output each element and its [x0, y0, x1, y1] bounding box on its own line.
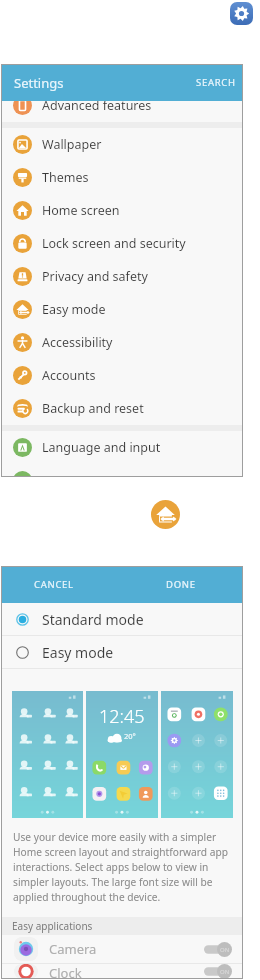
button[interactable]: Clock [1, 964, 243, 979]
button[interactable]: Language and input [1, 431, 243, 464]
button[interactable]: SEARCH [189, 69, 243, 96]
staticText: Settings [14, 74, 64, 92]
button[interactable]: CANCEL [28, 572, 80, 597]
button[interactable]: Easy mode [1, 636, 243, 668]
staticText: Easy mode [42, 301, 106, 318]
button[interactable]: Camera [1, 935, 243, 963]
staticText: Privacy and safety [42, 268, 148, 285]
staticText: SEARCH [196, 76, 236, 89]
button[interactable]: Themes [1, 161, 243, 194]
button[interactable]: Wallpaper [1, 128, 243, 161]
button[interactable] [1, 464, 243, 477]
staticText: CANCEL [34, 578, 74, 591]
staticText: Use your device more easily with a simpl… [13, 830, 234, 904]
staticText: DONE [166, 578, 196, 591]
staticText: Home screen [42, 202, 120, 219]
button[interactable]: Accounts [1, 359, 243, 392]
button[interactable]: Advanced features [1, 89, 243, 122]
staticText: Accessibility [42, 334, 113, 351]
staticText: Camera [49, 940, 97, 958]
staticText: ON [220, 968, 230, 976]
staticText: Easy mode [42, 643, 114, 662]
staticText: Clock [49, 964, 82, 979]
staticText: Lock screen and security [42, 235, 186, 252]
staticText: Accounts [42, 367, 96, 384]
button[interactable]: Settings [230, 2, 253, 25]
button[interactable]: Home screen [1, 194, 243, 227]
staticText: Themes [42, 169, 89, 186]
staticText: 20° [124, 731, 136, 741]
button[interactable]: Accessibility [1, 326, 243, 359]
staticText: Language and input [42, 439, 161, 456]
button[interactable]: Privacy and safety [1, 260, 243, 293]
button[interactable]: Easy mode [151, 500, 180, 529]
staticText: Backup and reset [42, 400, 144, 417]
staticText: 12:45 [99, 704, 145, 729]
button[interactable]: Toggle Clock [204, 964, 232, 979]
button[interactable]: Toggle Camera [204, 942, 232, 957]
staticText: Standard mode [42, 610, 144, 629]
staticText: Easy applications [12, 919, 93, 933]
button[interactable]: Easy mode [1, 293, 243, 326]
button[interactable]: DONE [160, 572, 202, 597]
staticText: Wallpaper [42, 136, 102, 153]
button[interactable]: Backup and reset [1, 392, 243, 425]
button[interactable]: Lock screen and security [1, 227, 243, 260]
staticText: ON [220, 946, 230, 954]
button[interactable]: Standard mode [1, 603, 243, 635]
staticText: Advanced features [42, 97, 152, 114]
